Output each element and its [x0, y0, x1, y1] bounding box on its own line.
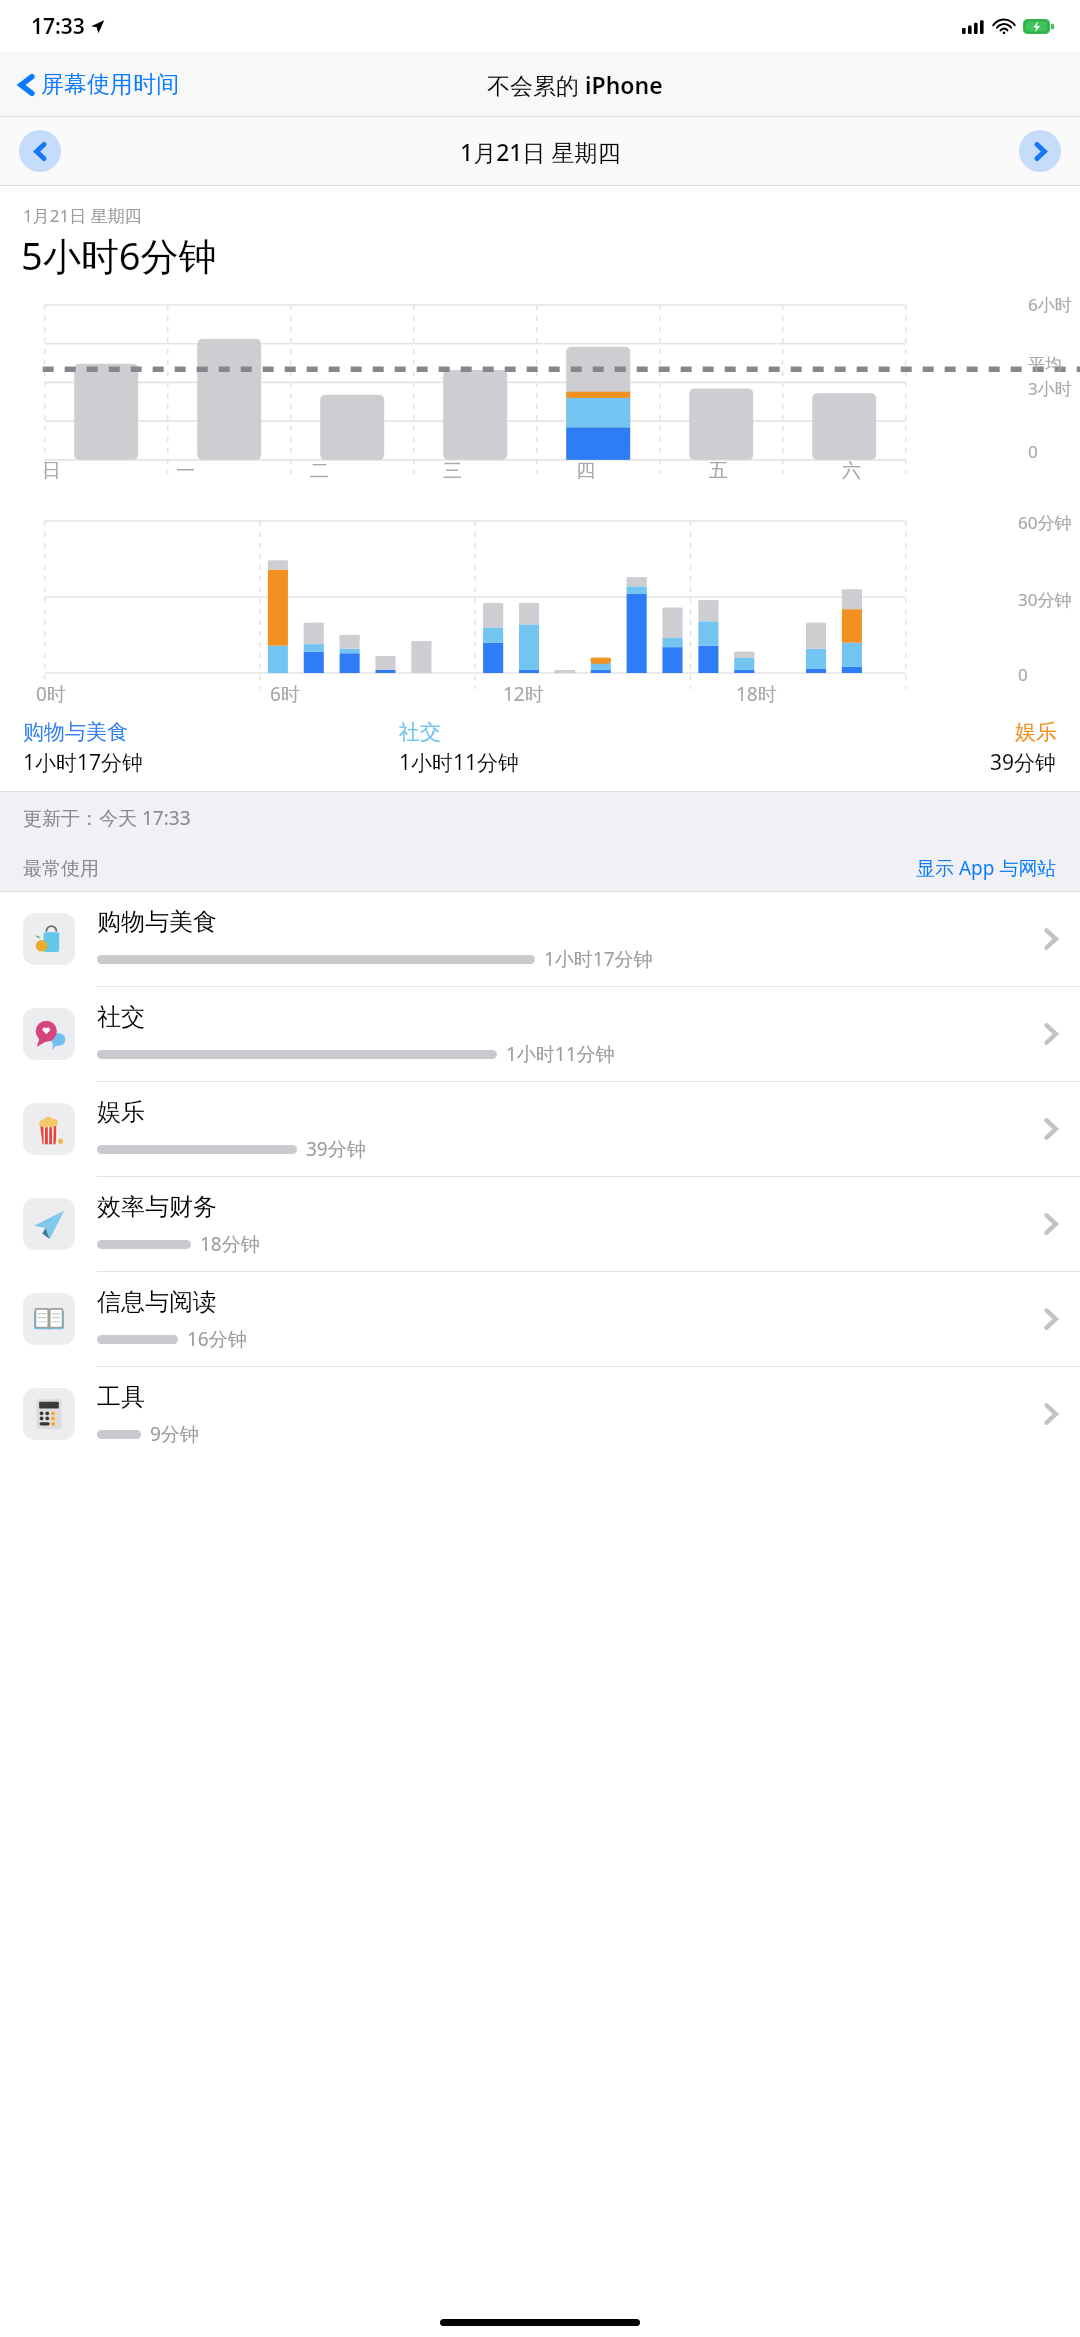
- staticText: 最常使用: [23, 857, 99, 881]
- button[interactable]: 屏幕使用时间: [18, 70, 179, 99]
- button[interactable]: 工具: [0, 1367, 1080, 1461]
- button[interactable]: 显示 App 与网站: [916, 855, 1057, 881]
- staticText: 社交: [399, 719, 441, 745]
- staticText: 平均: [1028, 354, 1062, 375]
- staticText: 9分钟: [150, 1421, 199, 1447]
- button[interactable]: Previous day: [19, 130, 61, 172]
- staticText: 6时: [270, 681, 300, 707]
- staticText: 三: [443, 459, 462, 483]
- staticText: 显示 App 与网站: [916, 855, 1057, 881]
- staticText: 12时: [503, 681, 544, 707]
- staticText: 工具: [97, 1382, 145, 1412]
- staticText: 更新于：今天 17:33: [23, 805, 191, 831]
- staticText: 17:33: [31, 12, 85, 41]
- staticText: 3小时: [1028, 377, 1072, 400]
- staticText: 18分钟: [200, 1231, 260, 1257]
- staticText: 18时: [736, 681, 777, 707]
- staticText: 四: [576, 459, 595, 483]
- staticText: 0: [1028, 440, 1038, 463]
- staticText: 0时: [36, 681, 66, 707]
- staticText: 39分钟: [306, 1136, 366, 1162]
- button[interactable]: 信息与阅读: [0, 1272, 1080, 1366]
- staticText: 1小时11分钟: [399, 748, 520, 777]
- button[interactable]: 娱乐: [0, 1082, 1080, 1176]
- staticText: 1小时11分钟: [506, 1041, 615, 1067]
- staticText: 30分钟: [1018, 588, 1072, 611]
- button[interactable]: 购物与美食: [0, 892, 1080, 986]
- staticText: 效率与财务: [97, 1192, 217, 1222]
- staticText: 16分钟: [187, 1326, 247, 1352]
- staticText: 0: [1018, 663, 1028, 686]
- staticText: 39分钟: [990, 748, 1057, 777]
- staticText: 1小时17分钟: [544, 946, 653, 972]
- staticText: 1月21日 星期四: [460, 136, 621, 167]
- staticText: 1小时17分钟: [23, 748, 144, 777]
- staticText: 娱乐: [1015, 719, 1057, 745]
- staticText: 一: [176, 459, 195, 483]
- staticText: 六: [842, 459, 861, 483]
- staticText: 购物与美食: [23, 719, 128, 745]
- staticText: 信息与阅读: [97, 1287, 217, 1317]
- staticText: 购物与美食: [97, 907, 217, 937]
- staticText: 娱乐: [97, 1097, 145, 1127]
- staticText: 五: [709, 459, 728, 483]
- staticText: 60分钟: [1018, 511, 1072, 534]
- button[interactable]: Next day: [1019, 130, 1061, 172]
- staticText: 不会累的 iPhone: [487, 69, 663, 100]
- staticText: 屏幕使用时间: [41, 70, 179, 99]
- button[interactable]: 效率与财务: [0, 1177, 1080, 1271]
- staticText: 二: [310, 459, 329, 483]
- staticText: 社交: [97, 1002, 145, 1032]
- staticText: 日: [42, 459, 61, 483]
- staticText: 6小时: [1028, 293, 1072, 316]
- staticText: 1月21日 星期四: [23, 204, 142, 227]
- button[interactable]: 社交: [0, 987, 1080, 1081]
- staticText: 5小时6分钟: [21, 229, 217, 281]
